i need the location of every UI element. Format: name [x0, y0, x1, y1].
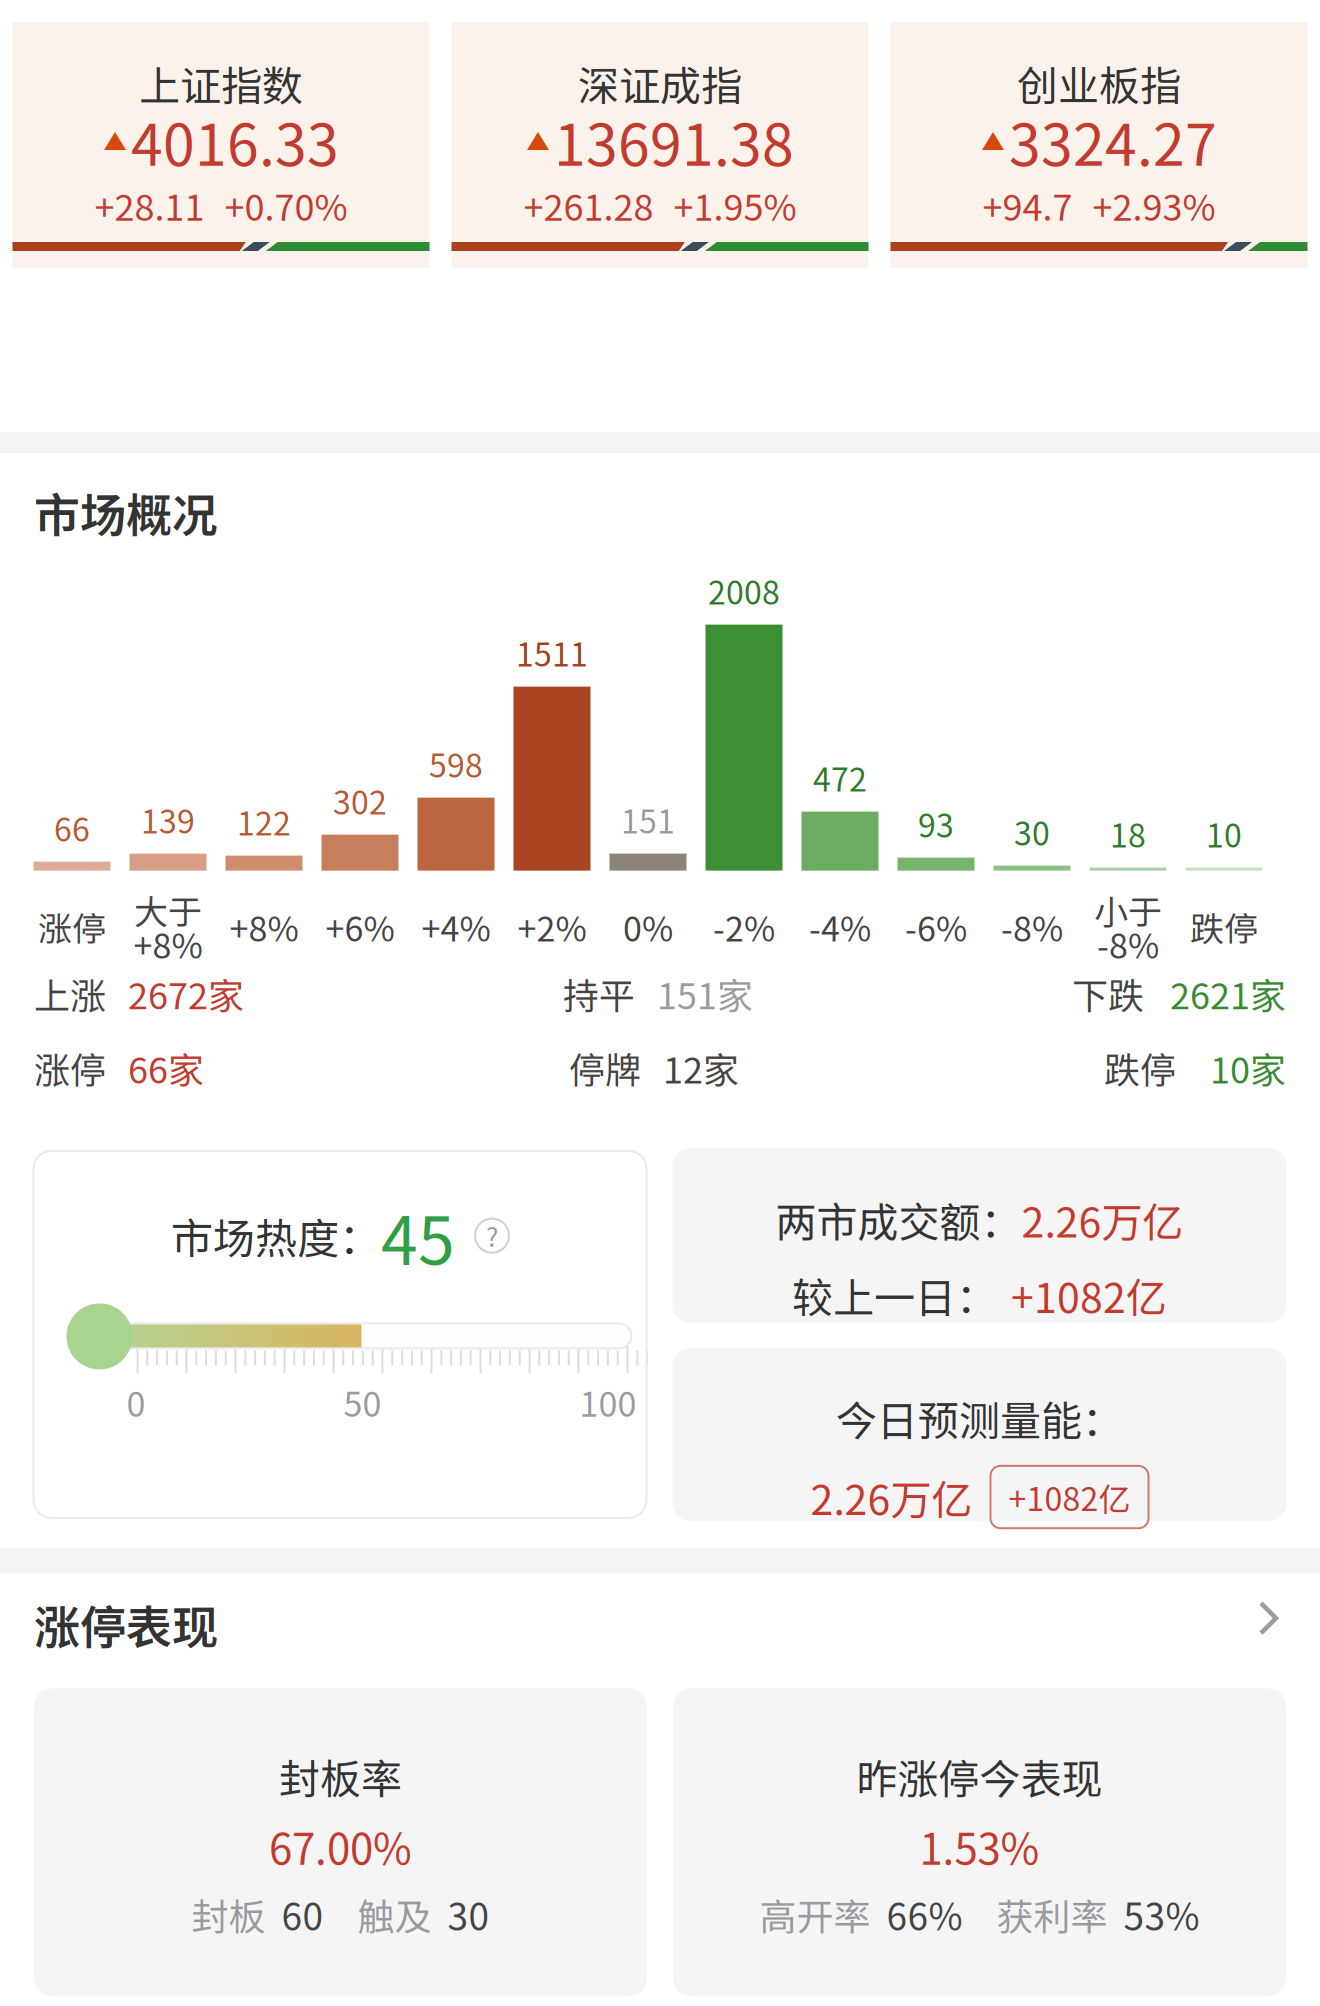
staticText: 93: [918, 800, 954, 847]
staticText: +6%: [325, 902, 394, 951]
staticText: +94.7: [982, 179, 1072, 231]
staticText: 涨停: [38, 902, 106, 951]
staticText: +2%: [517, 902, 586, 951]
staticText: -2%: [713, 902, 775, 951]
staticText: +1.95%: [673, 179, 796, 231]
staticText: -4%: [809, 902, 871, 951]
staticText: 151家: [657, 968, 753, 1020]
staticText: 66家: [128, 1042, 204, 1094]
button[interactable]: 查看涨停表现详情: [1258, 1601, 1288, 1647]
staticText: 472: [813, 754, 867, 801]
staticText: 2672家: [128, 968, 244, 1020]
staticText: 上证指数: [139, 53, 303, 113]
staticText: 60: [281, 1888, 323, 1941]
staticText: 今日预测量能：: [836, 1388, 1123, 1448]
staticText: +8%: [229, 902, 298, 951]
staticText: +2.93%: [1092, 179, 1215, 231]
staticText: 66%: [886, 1888, 962, 1941]
staticText: 122: [237, 798, 291, 845]
staticText: 2.26万亿: [1021, 1190, 1183, 1249]
staticText: 100: [579, 1377, 636, 1427]
staticText: 0%: [623, 902, 673, 951]
staticText: 持平: [563, 968, 635, 1020]
staticText: 10家: [1210, 1042, 1286, 1094]
staticText: +261.28: [523, 179, 653, 231]
staticText: 停牌: [569, 1042, 641, 1094]
staticText: 1.53%: [919, 1816, 1039, 1877]
staticText: -8%: [1097, 919, 1159, 968]
staticText: 2008: [708, 567, 780, 614]
staticText: 30: [447, 1888, 489, 1941]
staticText: -6%: [905, 902, 967, 951]
staticText: +4%: [421, 902, 490, 951]
staticText: 上涨: [34, 968, 106, 1020]
staticText: 13691.38: [554, 100, 794, 182]
staticText: 深证成指: [578, 53, 742, 113]
staticText: -8%: [1001, 902, 1063, 951]
staticText: 598: [429, 740, 483, 787]
staticText: 市场概况: [34, 479, 218, 546]
button[interactable]: 上证指数: [12, 22, 429, 268]
staticText: +28.11: [94, 179, 204, 231]
staticText: 12家: [663, 1042, 739, 1094]
staticText: 下跌: [1072, 968, 1144, 1020]
button[interactable]: 创业板指: [890, 22, 1307, 268]
staticText: ?: [486, 1217, 498, 1254]
staticText: 1511: [516, 629, 588, 676]
staticText: 50: [343, 1377, 381, 1427]
staticText: 4016.33: [131, 100, 339, 182]
staticText: 大于: [134, 885, 202, 934]
staticText: 151: [621, 796, 675, 843]
staticText: 两市成交额：: [775, 1190, 1021, 1249]
staticText: 10: [1206, 810, 1242, 857]
button[interactable]: 昨涨停今表现: [673, 1688, 1286, 1996]
staticText: 3324.27: [1009, 100, 1217, 182]
staticText: 30: [1014, 808, 1050, 855]
staticText: +8%: [133, 919, 202, 968]
staticText: 139: [141, 796, 195, 843]
staticText: 45: [381, 1188, 455, 1283]
staticText: 53%: [1123, 1888, 1199, 1941]
staticText: 67.00%: [269, 1816, 412, 1877]
staticText: 18: [1110, 810, 1146, 857]
staticText: 跌停: [1190, 902, 1258, 951]
staticText: 涨停表现: [34, 1591, 218, 1657]
staticText: 市场热度：: [171, 1205, 381, 1266]
staticText: 封板率: [279, 1747, 402, 1806]
staticText: 涨停: [34, 1042, 106, 1094]
staticText: 获利率: [996, 1888, 1107, 1941]
staticText: +1082亿: [1011, 1265, 1167, 1325]
staticText: 66: [54, 804, 90, 851]
staticText: 封板: [191, 1888, 265, 1941]
button[interactable]: 深证成指: [451, 22, 868, 268]
staticText: +0.70%: [224, 179, 347, 231]
button[interactable]: 封板率: [34, 1688, 647, 1996]
staticText: 2.26万亿: [810, 1467, 972, 1527]
staticText: 302: [333, 777, 387, 824]
staticText: 0: [126, 1377, 145, 1427]
staticText: 创业板指: [1017, 53, 1181, 113]
staticText: 高开率: [759, 1888, 870, 1941]
staticText: 2621家: [1170, 968, 1286, 1020]
staticText: 较上一日：: [792, 1265, 997, 1325]
staticText: 触及: [357, 1888, 431, 1941]
staticText: 昨涨停今表现: [856, 1747, 1102, 1806]
staticText: +1082亿: [1008, 1474, 1130, 1520]
staticText: 小于: [1094, 885, 1162, 934]
staticText: 跌停: [1104, 1042, 1176, 1094]
